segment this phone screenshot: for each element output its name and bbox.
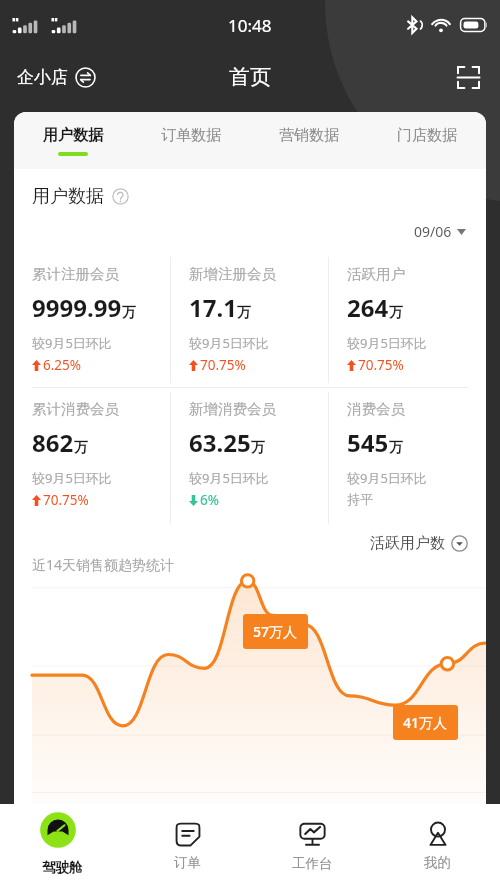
button[interactable]: 累计注册会员: [14, 253, 170, 387]
staticText: 较9月5日环比: [189, 334, 269, 352]
button[interactable]: 活跃用户: [329, 253, 486, 387]
staticText: 较9月5日环比: [347, 469, 427, 487]
staticText: 消费会员: [347, 400, 405, 418]
staticText: 累计消费会员: [32, 400, 119, 418]
button[interactable]: 营销数据: [250, 112, 368, 169]
staticText: 41万人: [403, 713, 448, 732]
button[interactable]: Help: [112, 188, 129, 205]
staticText: 862: [32, 426, 74, 459]
button[interactable]: 驾驶舱: [0, 804, 125, 888]
staticText: 9999.99: [32, 291, 122, 324]
staticText: 6.25%: [43, 356, 82, 374]
button[interactable]: 订单: [125, 804, 250, 888]
staticText: 活跃用户数: [370, 534, 445, 553]
staticText: 订单数据: [161, 126, 221, 145]
button[interactable]: 新增注册会员: [171, 253, 328, 387]
staticText: 万: [389, 439, 403, 457]
staticText: 持平: [347, 491, 373, 507]
staticText: 工作台: [292, 855, 333, 872]
button[interactable]: 企小店: [14, 62, 99, 93]
staticText: 10:48: [228, 14, 272, 37]
staticText: 近14天销售额趋势统计: [32, 555, 175, 574]
staticText: 我的: [424, 854, 451, 871]
staticText: 万: [122, 304, 136, 322]
button[interactable]: 订单数据: [132, 112, 250, 169]
button[interactable]: 用户数据: [14, 112, 132, 169]
staticText: 万: [74, 439, 88, 457]
button[interactable]: 累计消费会员: [14, 388, 170, 528]
staticText: 首页: [229, 64, 271, 90]
staticText: 用户数据: [43, 126, 103, 145]
staticText: 万: [251, 439, 265, 457]
staticText: 驾驶舱: [42, 859, 83, 876]
button[interactable]: 新增消费会员: [171, 388, 328, 528]
staticText: 企小店: [17, 67, 68, 88]
staticText: 较9月5日环比: [347, 334, 427, 352]
staticText: 较9月5日环比: [32, 334, 112, 352]
staticText: 新增消费会员: [189, 400, 276, 418]
staticText: 09/06: [414, 222, 452, 241]
button[interactable]: 门店数据: [368, 112, 486, 169]
button[interactable]: 工作台: [250, 804, 375, 888]
staticText: 57万人: [253, 622, 298, 641]
staticText: 新增注册会员: [189, 265, 276, 283]
staticText: 17.1: [189, 291, 237, 324]
staticText: 营销数据: [279, 126, 339, 145]
button[interactable]: 活跃用户数: [14, 534, 486, 553]
staticText: 545: [347, 426, 389, 459]
staticText: 门店数据: [397, 126, 457, 145]
staticText: 订单: [174, 854, 201, 871]
button[interactable]: 我的: [375, 804, 500, 888]
button[interactable]: 09/06: [14, 222, 486, 241]
staticText: 万: [389, 304, 403, 322]
staticText: 活跃用户: [347, 265, 405, 283]
button[interactable]: 消费会员: [329, 388, 486, 528]
staticText: 较9月5日环比: [189, 469, 269, 487]
staticText: 63.25: [189, 426, 251, 459]
staticText: 累计注册会员: [32, 265, 119, 283]
staticText: 70.75%: [43, 491, 89, 509]
staticText: 70.75%: [200, 356, 246, 374]
staticText: 万: [237, 304, 251, 322]
staticText: 较9月5日环比: [32, 469, 112, 487]
staticText: 用户数据: [32, 185, 104, 208]
staticText: 6%: [200, 491, 219, 509]
button[interactable]: Scan QR code: [451, 60, 486, 95]
staticText: 264: [347, 291, 389, 324]
staticText: 70.75%: [358, 356, 404, 374]
